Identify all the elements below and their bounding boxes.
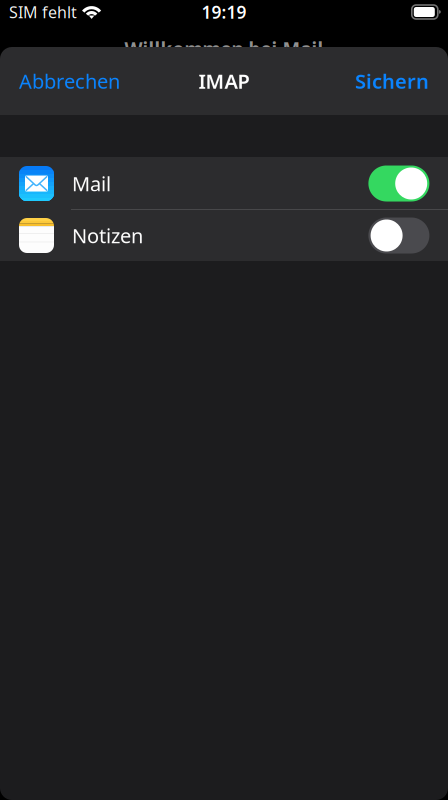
button[interactable]: Mail <box>0 157 448 210</box>
staticText: 19:19 <box>201 0 246 23</box>
button[interactable]: Abbrechen <box>19 62 120 100</box>
staticText: Abbrechen <box>19 68 120 94</box>
staticText: Sichern <box>355 68 429 94</box>
staticText: IMAP <box>198 68 249 94</box>
staticText: Willkommen bei Mail <box>124 37 323 61</box>
staticText: SIM fehlt <box>9 1 77 23</box>
button[interactable]: Notizen <box>0 210 448 261</box>
staticText: Notizen <box>72 222 143 249</box>
staticText: Mail <box>72 170 111 197</box>
button[interactable]: Sichern <box>355 62 429 100</box>
